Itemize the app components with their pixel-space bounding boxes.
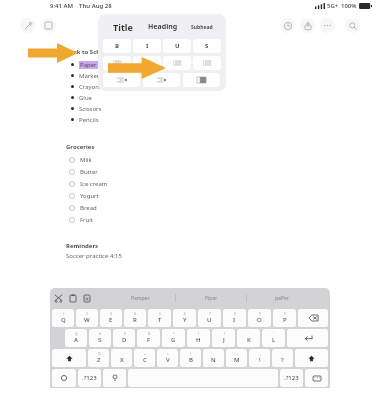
button[interactable]: Crayons (66, 81, 380, 92)
button[interactable]: U (163, 39, 191, 53)
button[interactable]: 5 (148, 309, 171, 327)
staticText: E (109, 316, 113, 324)
button[interactable]: S (193, 39, 221, 53)
button[interactable]: : (226, 349, 247, 367)
button[interactable]: 7 (198, 309, 221, 327)
staticText: Glue (79, 94, 93, 102)
staticText: Markers (79, 72, 103, 80)
button[interactable]: % (88, 349, 109, 367)
staticText: " (273, 332, 275, 336)
button[interactable]: # (89, 329, 111, 347)
button[interactable]: Shift (295, 349, 328, 367)
staticText: Fruit (80, 216, 94, 224)
button[interactable]: Markup (20, 18, 35, 33)
button[interactable]: Milk (66, 154, 380, 166)
staticText: G (171, 336, 176, 344)
staticText: Milk (80, 156, 92, 164)
button[interactable]: Markers (66, 70, 380, 81)
button[interactable]: Fruit (66, 214, 380, 226)
button[interactable] (193, 56, 221, 70)
staticText: Butter (80, 168, 98, 176)
button[interactable]: ) (212, 329, 235, 347)
button[interactable]: Bread (66, 202, 380, 214)
staticText: P (283, 316, 287, 324)
button[interactable]: Shift (52, 349, 86, 367)
button[interactable]: ; (203, 349, 224, 367)
button[interactable]: Ice cream (66, 178, 380, 190)
staticText: D (122, 336, 127, 344)
button[interactable]: ' (237, 329, 260, 347)
staticText: A (74, 336, 78, 344)
button[interactable]: $ (113, 329, 135, 347)
staticText: Reminders (66, 242, 99, 250)
button[interactable]: More options (320, 18, 335, 33)
staticText: Subhead (191, 24, 213, 31)
button[interactable]: Paper (66, 59, 380, 70)
button[interactable] (103, 73, 140, 87)
button[interactable]: Yogurt (66, 190, 380, 202)
button[interactable]: Copy (67, 293, 78, 304)
staticText: Paper (80, 61, 97, 69)
button[interactable]: Return (287, 329, 328, 347)
staticText: Yogurt (80, 192, 99, 200)
button[interactable]: Subhead (182, 18, 221, 36)
staticText: / (190, 352, 192, 356)
button[interactable]: , (249, 349, 270, 367)
staticText: Ice cream (80, 180, 108, 188)
button[interactable]: 4 (124, 309, 146, 327)
button[interactable]: Scissors (66, 103, 380, 114)
button[interactable]: 0 (273, 309, 296, 327)
button[interactable]: Search (345, 18, 360, 33)
button[interactable]: .?123 (78, 369, 101, 387)
button[interactable]: @ (65, 329, 87, 347)
button[interactable]: Cut (53, 293, 64, 304)
button[interactable]: Pencils (66, 114, 380, 125)
button[interactable] (143, 73, 180, 87)
button[interactable]: . (272, 349, 293, 367)
button[interactable]: Title (103, 18, 143, 36)
staticText: . (282, 352, 283, 356)
button[interactable] (163, 56, 191, 70)
staticText: B (115, 42, 119, 50)
staticText: S (98, 336, 102, 344)
button[interactable]: Share (300, 18, 315, 33)
button[interactable]: Emoji (52, 369, 76, 387)
button[interactable]: Recents (280, 18, 295, 33)
button[interactable]: Heading (143, 18, 182, 36)
button[interactable]: * (162, 329, 185, 347)
button[interactable]: 3 (100, 309, 122, 327)
button[interactable]: paPer (247, 288, 317, 308)
button[interactable]: Microphone (103, 369, 126, 387)
button[interactable]: New note (41, 18, 56, 33)
staticText: ! (259, 356, 261, 364)
button[interactable]: Piper (176, 288, 246, 308)
staticText: 7 (209, 312, 211, 316)
button[interactable]: Hide keyboard (305, 369, 328, 387)
button[interactable]: I (133, 39, 161, 53)
button[interactable]: = (157, 349, 178, 367)
button[interactable]: " (262, 329, 285, 347)
button[interactable] (133, 56, 161, 70)
button[interactable]: 6 (173, 309, 196, 327)
staticText: U (207, 316, 212, 324)
button[interactable]: Glue (66, 92, 380, 103)
button[interactable]: 1 (52, 309, 74, 327)
button[interactable] (103, 56, 131, 70)
button[interactable]: Paste (81, 293, 92, 304)
button[interactable]: Butter (66, 166, 380, 178)
button[interactable] (183, 73, 220, 87)
button[interactable]: + (134, 349, 155, 367)
button[interactable]: .?123 (280, 369, 303, 387)
button[interactable]: - (111, 349, 132, 367)
button[interactable]: 9 (248, 309, 271, 327)
button[interactable]: Pamper (106, 288, 175, 308)
button[interactable]: 8 (223, 309, 246, 327)
button[interactable]: / (180, 349, 201, 367)
button[interactable]: 2 (76, 309, 98, 327)
button[interactable]: & (137, 329, 160, 347)
button[interactable]: Backspace (298, 309, 328, 327)
button[interactable]: B (103, 39, 131, 53)
button[interactable]: ( (187, 329, 210, 347)
staticText: Pencils (79, 116, 99, 124)
